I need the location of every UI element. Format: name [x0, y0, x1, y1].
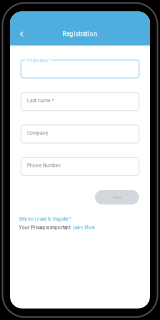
- button[interactable]: Next: [95, 190, 139, 204]
- staticText: Why do I need to Register?: [19, 216, 71, 222]
- staticText: Your Privacy is important.: [19, 225, 71, 230]
- staticText: Last name *: [27, 98, 54, 103]
- staticText: First name *: [26, 58, 50, 63]
- button[interactable]: Back: [15, 28, 29, 40]
- staticText: Learn More: [72, 225, 94, 230]
- staticText: Registration: [62, 30, 97, 38]
- staticText: Company: [27, 130, 48, 136]
- staticText: Next: [113, 195, 121, 200]
- button[interactable]: Learn More: [72, 225, 94, 230]
- staticText: Phone Number: [27, 163, 61, 168]
- button[interactable]: Why do I need to Register?: [19, 216, 71, 222]
